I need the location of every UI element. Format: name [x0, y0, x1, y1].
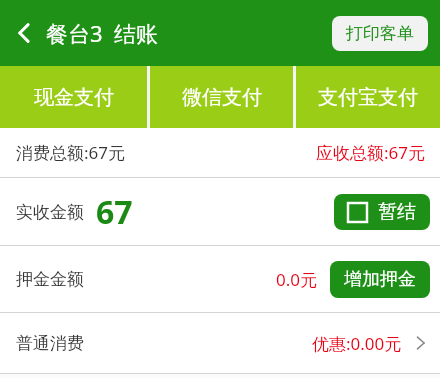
button[interactable]: 暂结	[334, 194, 430, 230]
other: Back	[12, 20, 38, 46]
button[interactable]: Back	[0, 12, 167, 54]
staticText: 普通消费	[16, 333, 84, 354]
staticText: 实收金额	[16, 202, 84, 223]
button[interactable]: 普通消费	[0, 313, 440, 373]
staticText: 应收总额:67元	[316, 141, 426, 164]
staticText: 打印客单	[346, 23, 414, 44]
staticText: 优惠:0.00元	[312, 332, 402, 355]
staticText: 67	[96, 190, 133, 234]
staticText: 支付宝支付	[318, 85, 418, 110]
staticText: 微信支付	[182, 85, 262, 110]
staticText: 0.0元	[276, 268, 318, 291]
staticText: 消费总额:67元	[16, 141, 126, 164]
button[interactable]: 打印客单	[332, 16, 428, 51]
staticText: 餐台3 结账	[46, 18, 159, 48]
button[interactable]: 支付宝支付	[296, 66, 440, 128]
staticText: 现金支付	[34, 85, 114, 110]
button[interactable]: 现金支付	[0, 66, 147, 128]
staticText: 增加押金	[344, 268, 416, 291]
staticText: 暂结	[378, 200, 416, 224]
button[interactable]: 微信支付	[150, 66, 293, 128]
button[interactable]: 增加押金	[330, 261, 430, 298]
staticText: 押金金额	[16, 269, 84, 290]
